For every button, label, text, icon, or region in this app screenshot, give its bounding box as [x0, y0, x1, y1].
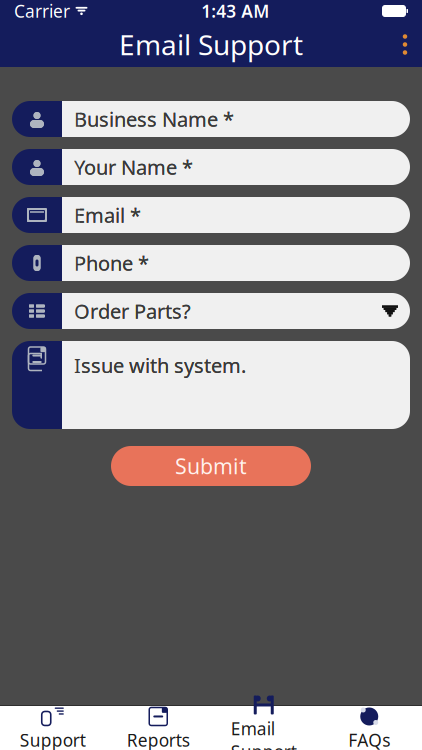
- staticText: Order Parts?: [74, 298, 191, 324]
- button[interactable]: Email Support: [211, 691, 316, 750]
- staticText: 1:43 AM: [201, 0, 269, 22]
- staticText: FAQs: [348, 728, 390, 750]
- staticText: Issue with system.: [74, 352, 246, 379]
- button[interactable]: Order Parts?: [12, 293, 410, 329]
- button[interactable]: Issue with system.: [12, 341, 410, 429]
- staticText: Email Support: [231, 717, 297, 750]
- button[interactable]: Reports: [105, 702, 211, 750]
- staticText: Carrier: [14, 0, 70, 22]
- staticText: Submit: [175, 452, 247, 480]
- staticText: Email Support: [119, 26, 303, 63]
- staticText: Business Name *: [74, 106, 234, 132]
- staticText: Support: [20, 728, 86, 750]
- staticText: Order Parts?: [74, 298, 191, 324]
- staticText: Business Name *: [74, 106, 234, 132]
- button[interactable]: Your Name *: [12, 149, 410, 185]
- button[interactable]: Submit: [111, 446, 311, 486]
- button[interactable]: Email *: [12, 197, 410, 233]
- staticText: Your Name *: [74, 154, 193, 180]
- staticText: Phone *: [74, 250, 149, 276]
- button[interactable]: FAQs: [316, 702, 422, 750]
- staticText: Issue with system.: [74, 352, 246, 379]
- button[interactable]: More options: [388, 22, 422, 67]
- staticText: Email *: [74, 202, 141, 228]
- button[interactable]: Support: [0, 702, 105, 750]
- staticText: Your Name *: [74, 154, 193, 180]
- button[interactable]: Business Name *: [12, 101, 410, 137]
- staticText: Email *: [74, 202, 141, 228]
- button[interactable]: Phone *: [12, 245, 410, 281]
- staticText: Phone *: [74, 250, 149, 276]
- staticText: Reports: [127, 728, 190, 750]
